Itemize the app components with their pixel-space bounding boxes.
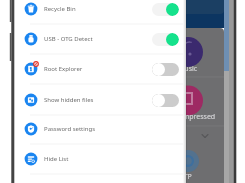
other: On (152, 33, 179, 46)
button[interactable]: Show hidden files (14, 85, 186, 115)
button[interactable]: Recycle Bin (14, 0, 186, 24)
button[interactable]: Root Explorer (14, 54, 186, 84)
staticText: Music (178, 64, 198, 74)
staticText: Show hidden files (44, 96, 94, 104)
staticText: Password settings (44, 125, 96, 133)
button[interactable]: Hide List (14, 144, 186, 174)
staticText: USB - OTG Detect (44, 35, 93, 43)
button[interactable]: Password settings (14, 114, 186, 144)
staticText: FTP (180, 172, 192, 182)
button[interactable]: USB - OTG Detect (14, 24, 186, 54)
staticText: Root Explorer (44, 65, 83, 73)
staticText: Recycle Bin (44, 5, 76, 13)
other: On (152, 3, 179, 16)
other: Off (152, 63, 179, 76)
staticText: Compressed (174, 112, 216, 122)
staticText: Hide List (44, 155, 69, 163)
other: Off (152, 94, 179, 107)
